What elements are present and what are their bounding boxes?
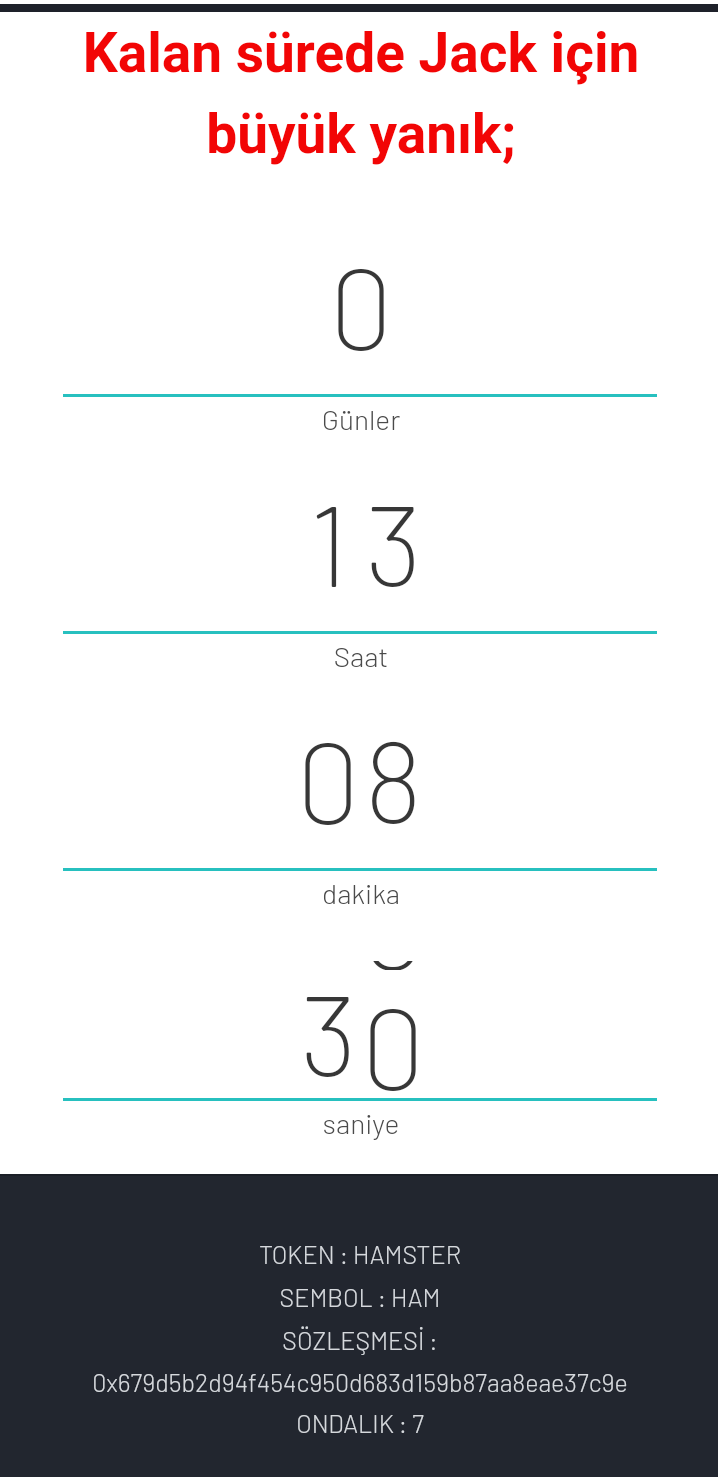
staticText: dakika — [2, 876, 718, 910]
staticText: 0 — [296, 710, 361, 840]
button[interactable]: SEMBOL : HAM — [0, 1276, 718, 1316]
staticText: TOKEN : HAMSTER — [1, 1239, 718, 1269]
staticText: 0x679d5b2d94f454c950d683d159b87aa8eae37c… — [1, 1367, 718, 1397]
staticText: saniye — [2, 1106, 718, 1140]
button[interactable]: Saat — [0, 397, 718, 672]
staticText: ONDALIK : 7 — [1, 1408, 718, 1438]
button[interactable]: 0x679d5b2d94f454c950d683d159b87aa8eae37c… — [0, 1361, 718, 1401]
button[interactable]: Günler — [0, 160, 718, 435]
staticText: 3 — [365, 473, 423, 603]
staticText: SÖZLEŞMESİ : — [1, 1325, 718, 1355]
staticText: 8 — [364, 710, 423, 840]
staticText: 1 — [309, 473, 349, 603]
staticText: 0 — [361, 961, 426, 970]
staticText: Kalan sürede Jack için büyük yanık; — [2, 21, 718, 167]
button[interactable]: SÖZLEŞMESİ : — [0, 1319, 718, 1359]
staticText: 3 — [300, 963, 358, 1100]
staticText: Günler — [2, 402, 718, 436]
staticText: Saat — [2, 639, 718, 673]
button[interactable]: ONDALIK : 7 — [0, 1402, 718, 1442]
button[interactable]: dakika — [0, 634, 718, 909]
staticText: SEMBOL : HAM — [1, 1282, 718, 1312]
staticText: 0 — [329, 236, 394, 366]
staticText: 0 — [361, 976, 426, 1113]
button[interactable]: TOKEN : HAMSTER — [0, 1233, 718, 1273]
button[interactable]: saniye — [0, 871, 718, 1139]
